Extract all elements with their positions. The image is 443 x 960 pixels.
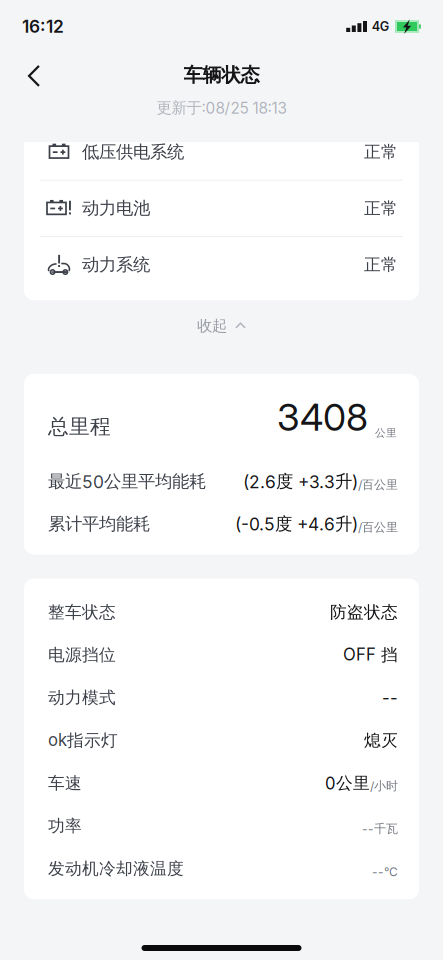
staticText: 动力电池 bbox=[82, 197, 150, 219]
staticText: 动力模式 bbox=[48, 687, 116, 708]
button[interactable]: 低压供电系统 bbox=[24, 124, 419, 180]
staticText: (2.6度 +3.3升) bbox=[243, 471, 358, 492]
staticText: OFF 挡 bbox=[343, 644, 398, 665]
staticText: 最近50公里平均能耗 bbox=[48, 471, 206, 492]
staticText: 整车状态 bbox=[48, 602, 116, 623]
staticText: 正常 bbox=[364, 142, 398, 163]
staticText: 电源挡位 bbox=[48, 644, 116, 665]
button[interactable]: 发动机冷却液温度 bbox=[24, 847, 419, 890]
staticText: --°C bbox=[372, 865, 398, 879]
staticText: 4G bbox=[372, 19, 389, 34]
staticText: 功率 bbox=[48, 815, 82, 836]
staticText: 车速 bbox=[48, 773, 82, 794]
staticText: (-0.5度 +4.6升) bbox=[235, 513, 358, 535]
staticText: 3408 bbox=[277, 394, 368, 440]
staticText: 更新于:08/25 18:13 bbox=[156, 98, 286, 117]
staticText: ok指示灯 bbox=[48, 730, 118, 751]
staticText: 16:12 bbox=[22, 16, 64, 37]
staticText: 收起 bbox=[197, 316, 227, 335]
staticText: /百公里 bbox=[358, 477, 398, 492]
staticText: 正常 bbox=[364, 198, 398, 219]
staticText: 公里 bbox=[375, 426, 397, 440]
staticText: 熄灭 bbox=[364, 730, 398, 751]
button[interactable]: 动力电池 bbox=[24, 181, 419, 236]
staticText: -- bbox=[382, 688, 398, 708]
button[interactable]: 动力系统 bbox=[24, 237, 419, 292]
staticText: 低压供电系统 bbox=[82, 141, 184, 163]
staticText: 车辆状态 bbox=[183, 63, 259, 87]
staticText: 正常 bbox=[364, 254, 398, 275]
staticText: /小时 bbox=[370, 778, 398, 794]
staticText: 总里程 bbox=[48, 414, 111, 440]
button[interactable]: 电源挡位 bbox=[24, 633, 419, 676]
staticText: --千瓦 bbox=[362, 821, 398, 836]
staticText: 0公里 bbox=[325, 773, 370, 794]
button[interactable]: 整车状态 bbox=[24, 591, 419, 633]
staticText: 发动机冷却液温度 bbox=[48, 858, 184, 879]
button[interactable]: 车速 bbox=[24, 762, 419, 804]
button[interactable]: Back bbox=[11, 54, 57, 98]
button[interactable]: 收起 bbox=[0, 300, 443, 374]
button[interactable]: ok指示灯 bbox=[24, 719, 419, 762]
button[interactable]: 动力模式 bbox=[24, 676, 419, 719]
staticText: 动力系统 bbox=[82, 254, 150, 275]
button[interactable]: 功率 bbox=[24, 804, 419, 847]
staticText: 累计平均能耗 bbox=[48, 513, 150, 535]
staticText: 防盗状态 bbox=[330, 602, 398, 623]
staticText: /百公里 bbox=[358, 520, 398, 535]
